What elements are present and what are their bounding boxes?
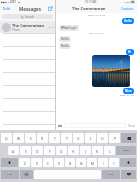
button[interactable]: B — [65, 158, 75, 167]
button[interactable]: Compose — [48, 6, 53, 11]
staticText: Hello — [61, 44, 69, 48]
button[interactable]: Y — [61, 133, 72, 143]
button[interactable]: Q — [1, 133, 12, 143]
staticText: ! — [103, 161, 104, 165]
button[interactable]: Contact — [120, 6, 135, 11]
staticText: Y — [66, 136, 68, 140]
staticText: Hello — [61, 37, 69, 41]
staticText: B — [69, 161, 72, 165]
staticText: Edit — [3, 6, 11, 11]
staticText: Z — [24, 161, 26, 165]
button[interactable]: G — [56, 146, 67, 155]
button[interactable]: U — [73, 133, 84, 143]
button[interactable]: Nice — [123, 88, 134, 94]
button[interactable]: D — [32, 146, 43, 155]
staticText: W — [17, 136, 21, 140]
staticText: Send — [128, 124, 135, 128]
staticText: D — [36, 149, 39, 153]
staticText: N — [80, 161, 83, 165]
staticText: .?123 — [7, 173, 13, 176]
staticText: U — [77, 136, 80, 140]
staticText: return — [123, 149, 130, 152]
staticText: C — [47, 161, 50, 165]
button[interactable]: X — [31, 158, 42, 167]
button[interactable]: Hello — [59, 43, 71, 49]
button[interactable]: Edit — [2, 6, 12, 11]
staticText: H — [72, 149, 75, 153]
button[interactable]: Z — [19, 158, 30, 167]
button[interactable]: O — [97, 133, 108, 143]
button[interactable]: J — [80, 146, 91, 155]
button[interactable]: .?123 — [102, 170, 120, 179]
button[interactable]: Send — [128, 124, 135, 128]
staticText: Hi — [128, 50, 132, 54]
staticText: Search — [25, 15, 35, 19]
button[interactable]: Hello — [122, 18, 134, 24]
staticText: X — [36, 161, 38, 165]
button[interactable]: H — [68, 146, 79, 155]
staticText: Messages — [19, 6, 41, 12]
button[interactable]: Backspace — [121, 133, 136, 143]
button[interactable]: Photo — [92, 55, 130, 87]
button[interactable]: A — [8, 146, 19, 155]
button[interactable]: T — [49, 133, 60, 143]
staticText: ? — [113, 161, 115, 165]
staticText: I — [90, 136, 92, 140]
button[interactable]: E — [25, 133, 36, 143]
staticText: Photo — [12, 28, 20, 32]
button[interactable]: P — [109, 133, 120, 143]
staticText: Today 10:17 AM — [59, 14, 134, 17]
button[interactable]: ! — [98, 158, 108, 167]
staticText: 100% — [124, 1, 130, 4]
button[interactable]: ? — [109, 158, 119, 167]
button[interactable]: What's up? — [59, 25, 79, 31]
staticText: Contact — [121, 6, 134, 11]
button[interactable]: W — [13, 133, 24, 143]
button[interactable]: Hello — [59, 36, 71, 42]
staticText: M — [91, 161, 94, 165]
staticText: Nice — [125, 89, 132, 93]
staticText: Read 10:17 AM — [59, 94, 134, 97]
button[interactable]: I — [85, 133, 96, 143]
staticText: J — [85, 149, 86, 153]
button[interactable]: .?123 — [1, 170, 19, 179]
staticText: G — [60, 149, 63, 153]
button[interactable]: The Cameraman — [0, 21, 55, 33]
button[interactable]: M — [87, 158, 97, 167]
button[interactable]: Hi — [126, 49, 134, 55]
staticText: F — [49, 149, 51, 153]
button[interactable]: C — [43, 158, 53, 167]
staticText: V — [58, 161, 60, 165]
button[interactable]: L — [104, 146, 115, 155]
button[interactable]: Hide keyboard — [121, 170, 136, 179]
button[interactable]: Emoji — [20, 170, 33, 179]
staticText: Sun 11:47 AM — [59, 32, 134, 35]
button[interactable]: V — [54, 158, 64, 167]
staticText: What's up? — [61, 26, 77, 30]
staticText: O — [101, 136, 104, 140]
button[interactable] — [64, 123, 126, 128]
button[interactable]: R — [37, 133, 48, 143]
button[interactable]: return — [116, 146, 136, 155]
staticText: 10:17 — [48, 26, 54, 29]
button[interactable]: Shift — [1, 158, 18, 167]
staticText: L — [109, 149, 111, 153]
staticText: P — [114, 136, 116, 140]
button[interactable]: Camera — [58, 124, 62, 128]
staticText: A — [12, 149, 15, 153]
staticText: K — [96, 149, 99, 153]
staticText: Hello — [124, 19, 132, 23]
button[interactable]: S — [20, 146, 31, 155]
button[interactable]: Search — [2, 14, 53, 19]
staticText: Q — [5, 136, 8, 140]
button[interactable]: F — [44, 146, 55, 155]
staticText: The Cameraman — [72, 6, 106, 12]
button[interactable]: K — [92, 146, 103, 155]
button[interactable]: N — [76, 158, 86, 167]
staticText: E — [30, 136, 32, 140]
staticText: AT&T — [10, 0, 17, 4]
staticText: R — [41, 136, 44, 140]
button[interactable]: Shift — [120, 158, 136, 167]
staticText: The Cameraman — [12, 23, 45, 28]
